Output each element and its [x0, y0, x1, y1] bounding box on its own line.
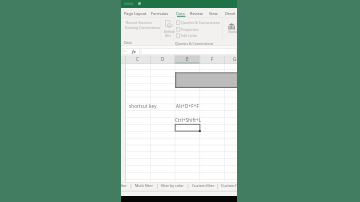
staticText: F [211, 56, 214, 62]
staticText: View [209, 11, 218, 16]
staticText: fx [132, 49, 136, 55]
staticText: Page Layout [124, 11, 147, 16]
staticText: Edit Links [181, 33, 198, 38]
staticText: Devel [225, 11, 236, 16]
staticText: E [186, 56, 189, 62]
staticText: Stocks [228, 30, 238, 34]
staticText: filter by color [161, 183, 184, 188]
staticText: G [233, 56, 237, 62]
staticText: Multi filter [135, 183, 153, 188]
staticText: Data [176, 11, 185, 16]
staticText: D [161, 56, 165, 62]
staticText: Custom f [221, 183, 237, 188]
staticText: Recent Sources [126, 20, 152, 25]
staticText: Data [124, 40, 132, 45]
staticText: Queries & Connections [181, 20, 220, 25]
staticText: All ▾ [165, 34, 171, 38]
staticText: Formulas [151, 11, 169, 16]
staticText: Queries & Connections [175, 41, 214, 46]
staticText: Properties [181, 27, 199, 32]
staticText: Ctrl+Shift+L [175, 117, 202, 123]
staticText: Review [190, 11, 203, 16]
staticText: Custom filter [192, 183, 215, 188]
staticText: lter [121, 183, 127, 188]
staticText: C [136, 56, 139, 62]
staticText: Refresh [164, 30, 176, 34]
staticText: Existing Connections [125, 25, 161, 30]
staticText: Alt+D+F+F [176, 103, 199, 109]
staticText: shortcut key [129, 103, 157, 109]
